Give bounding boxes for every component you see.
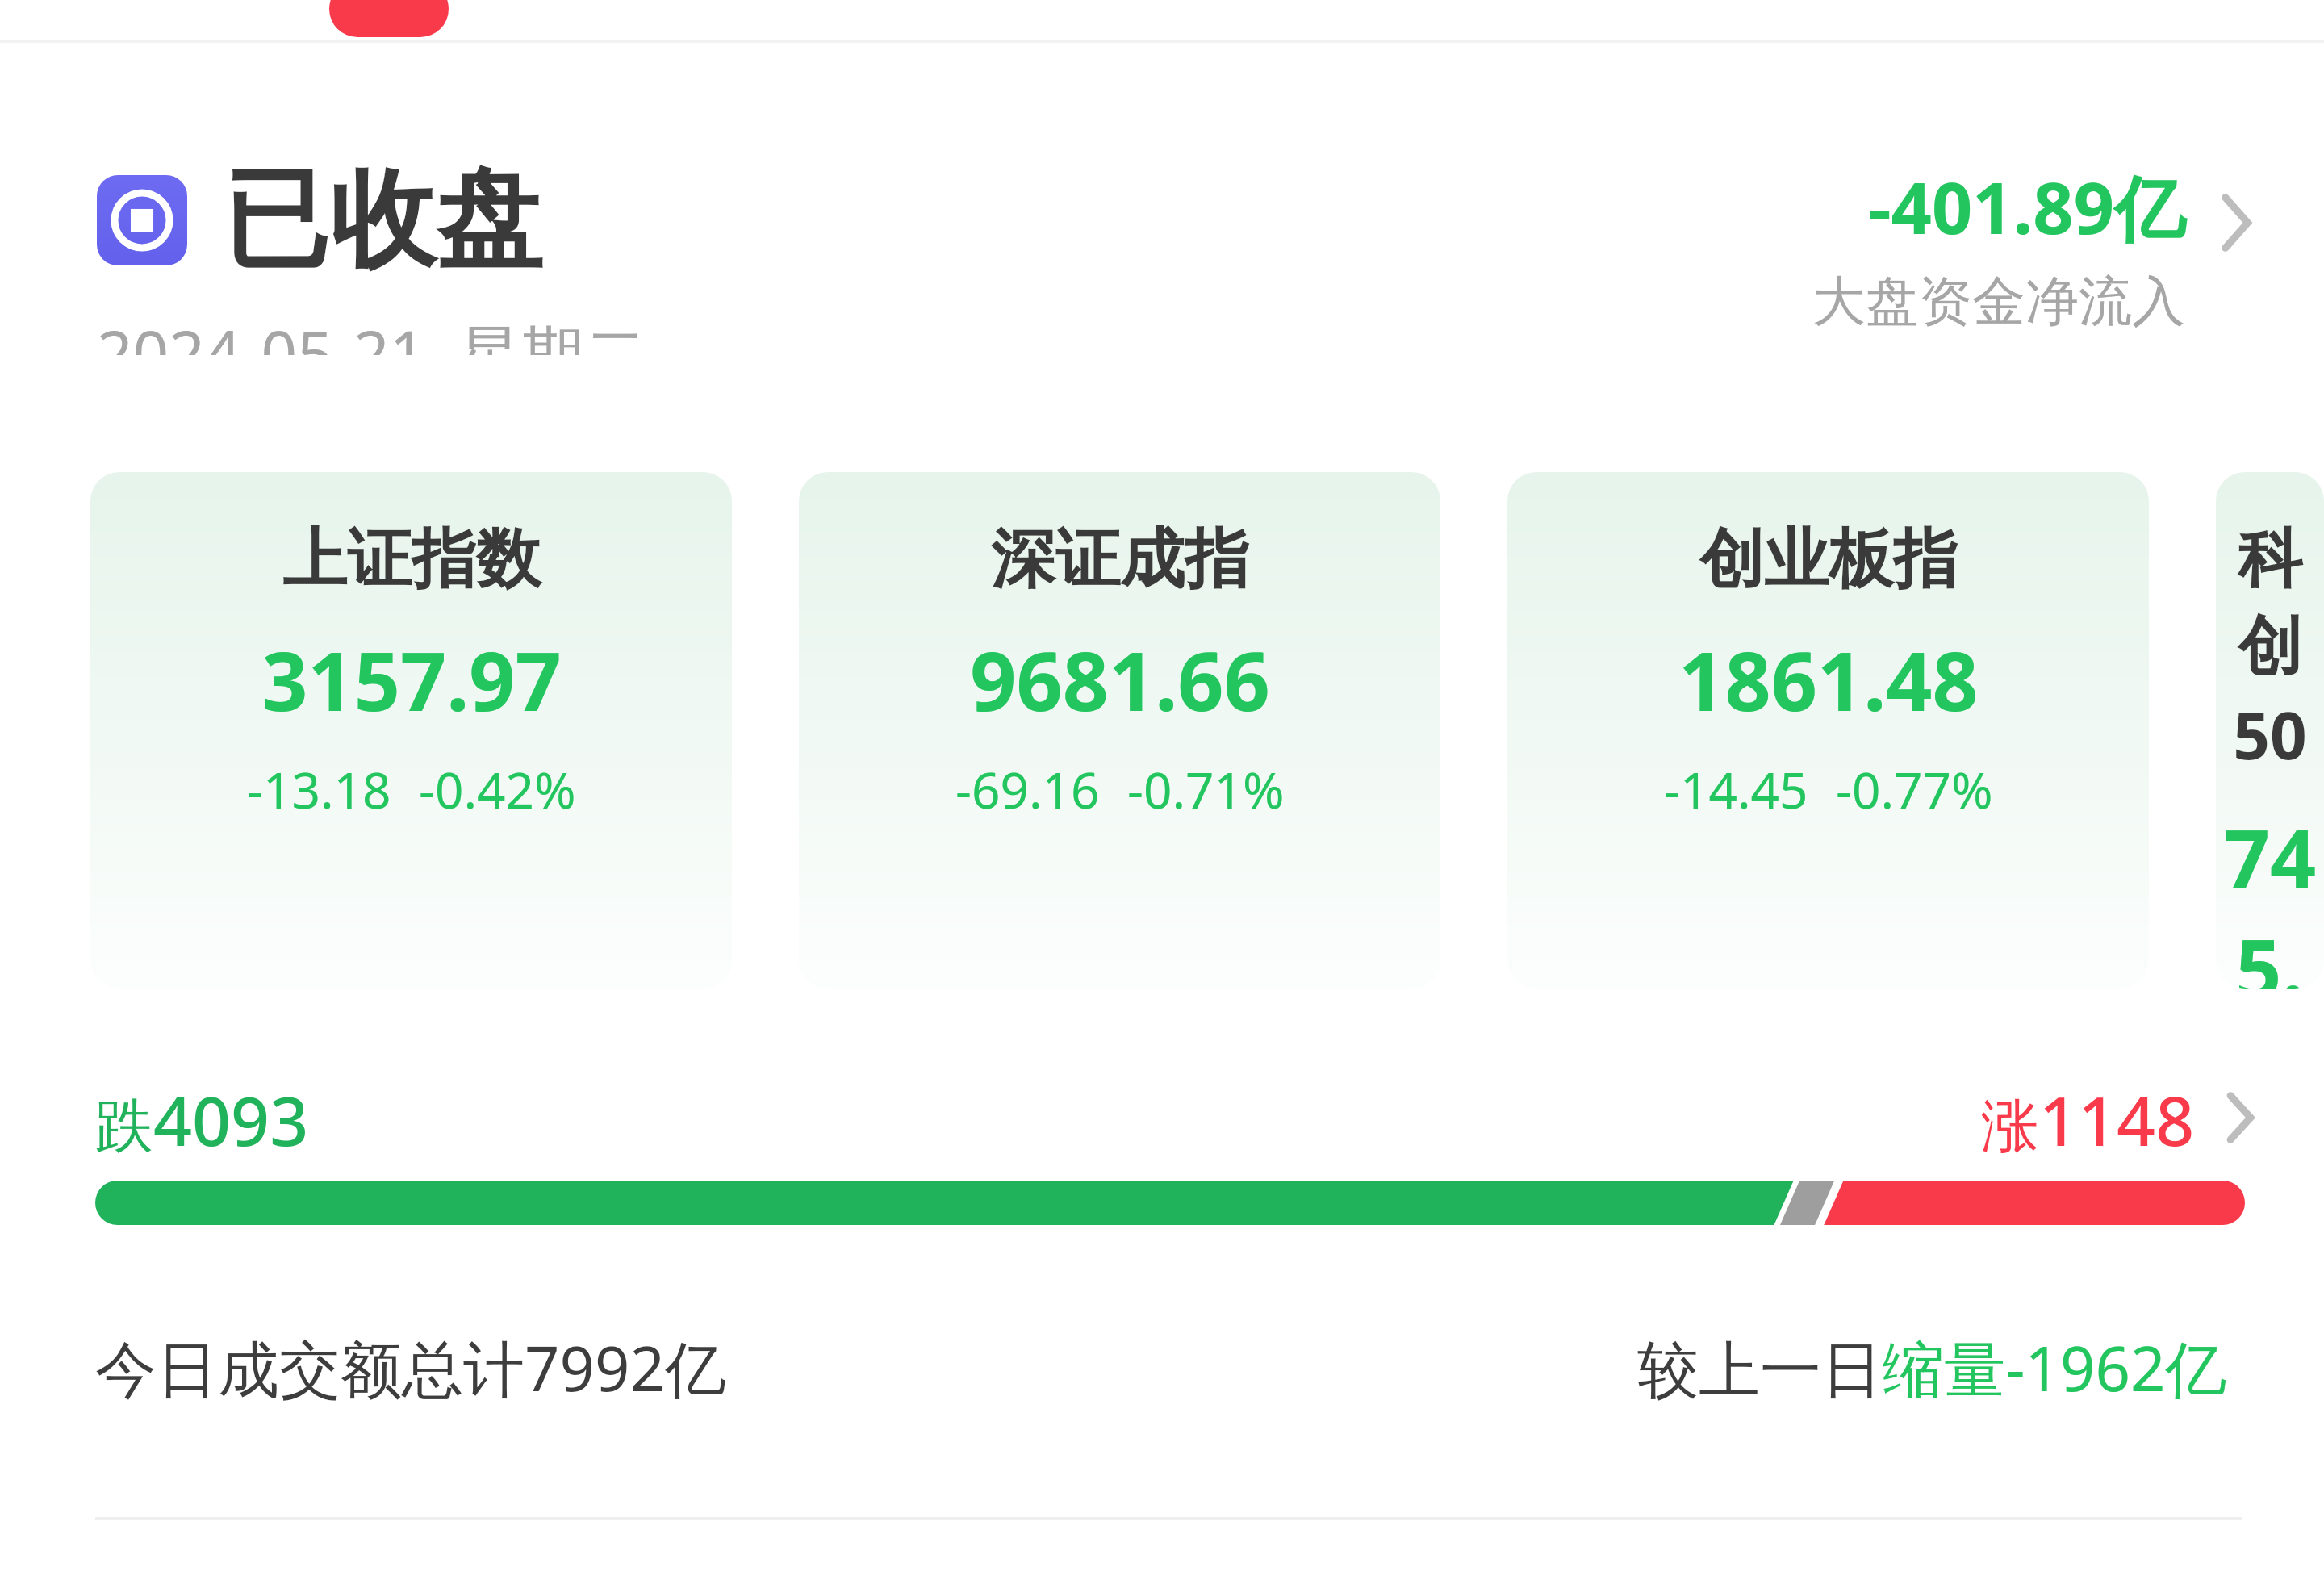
staticText: 较上一日缩量-1962亿 bbox=[1637, 1326, 2227, 1410]
staticText: 2024-05-21 星期二 bbox=[97, 310, 647, 355]
other: More capital flow bbox=[2208, 182, 2264, 263]
button[interactable]: 上证指数 bbox=[90, 472, 732, 989]
staticText: 已收盘 bbox=[223, 153, 542, 287]
staticText: 9681.66 bbox=[970, 625, 1270, 734]
button[interactable]: 深证成指 bbox=[799, 472, 1440, 989]
staticText: 科创50 bbox=[2216, 519, 2324, 778]
staticText: 1861.48 bbox=[1678, 625, 1979, 734]
staticText: -13.18 bbox=[247, 755, 391, 823]
staticText: 跌4093 bbox=[95, 1073, 309, 1162]
staticText: -0.42% bbox=[419, 755, 576, 823]
staticText: 上证指数 bbox=[282, 519, 541, 600]
staticText: 涨1148 bbox=[1981, 1073, 2195, 1162]
other: More market breadth bbox=[2216, 1083, 2264, 1152]
button[interactable]: 跌4093 bbox=[0, 1073, 2324, 1162]
staticText: -401.89亿 bbox=[1868, 158, 2185, 255]
button[interactable]: Tab indicator bbox=[329, 0, 449, 37]
staticText: 745.11 bbox=[2216, 802, 2324, 989]
staticText: -0.71% bbox=[1127, 755, 1285, 823]
button[interactable]: 已收盘 bbox=[0, 153, 2324, 355]
staticText: -0.77% bbox=[1836, 755, 1993, 823]
staticText: 创业板指 bbox=[1699, 519, 1958, 600]
button[interactable]: 科创50 bbox=[2216, 472, 2324, 989]
staticText: 大盘资金净流入 bbox=[1812, 268, 2185, 335]
staticText: 今日成交额总计7992亿 bbox=[95, 1326, 726, 1410]
staticText: -14.45 bbox=[1664, 755, 1808, 823]
staticText: -69.16 bbox=[955, 755, 1100, 823]
button[interactable]: Advance decline ratio bbox=[95, 1181, 2245, 1225]
button[interactable]: 创业板指 bbox=[1507, 472, 2149, 989]
staticText: 深证成指 bbox=[991, 519, 1249, 600]
staticText: 3157.97 bbox=[261, 625, 562, 734]
